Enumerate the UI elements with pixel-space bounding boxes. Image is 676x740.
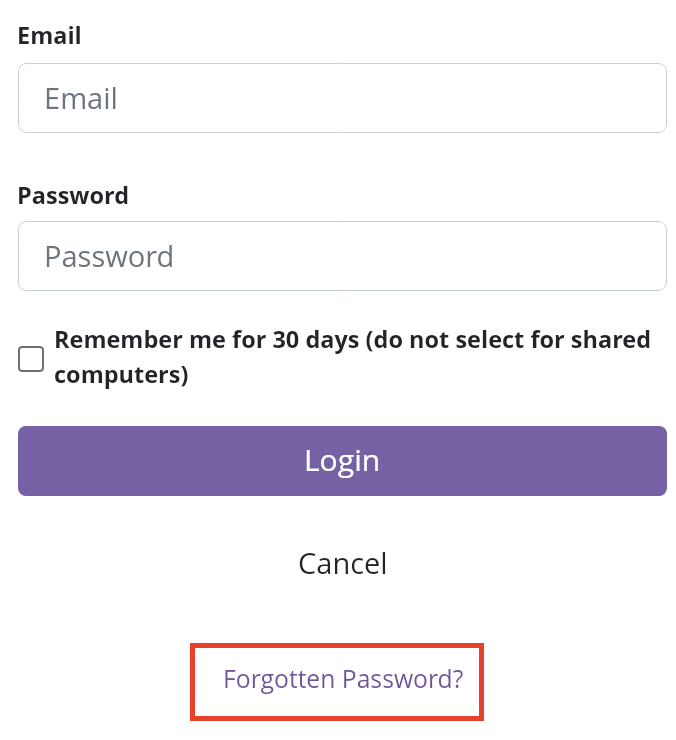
staticText: Email — [44, 78, 118, 117]
staticText: Cancel — [298, 543, 388, 582]
button[interactable]: Remember me for 30 days (do not select f… — [18, 323, 666, 390]
button[interactable]: Forgotten Password? — [190, 643, 484, 721]
button[interactable]: Login — [18, 426, 667, 496]
staticText: Remember me for 30 days (do not select f… — [54, 323, 666, 390]
button[interactable]: Cancel — [280, 537, 406, 588]
staticText: Password — [44, 236, 175, 275]
button[interactable]: Email input field — [18, 63, 667, 133]
staticText: Forgotten Password? — [223, 662, 464, 696]
button[interactable]: Password input field — [18, 221, 667, 291]
staticText: Email — [17, 19, 82, 51]
staticText: Login — [304, 439, 381, 480]
staticText: Password — [17, 179, 130, 211]
